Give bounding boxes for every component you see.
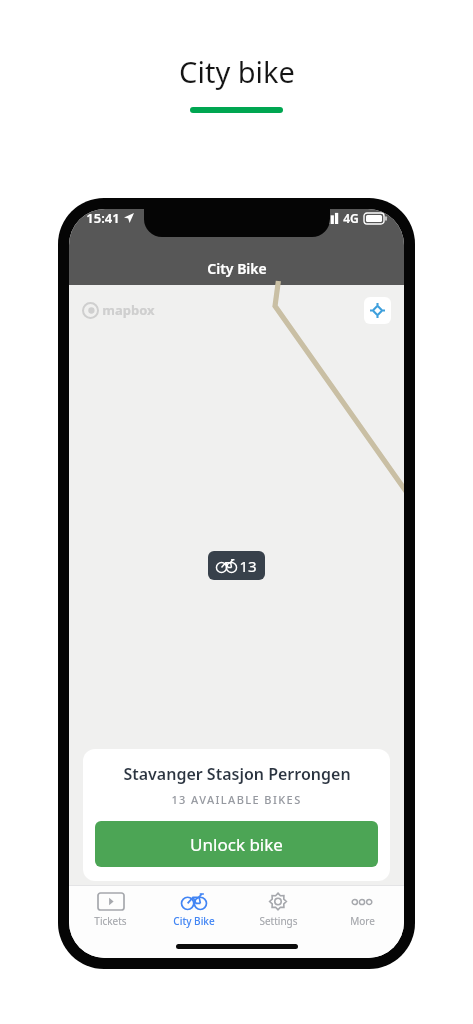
staticText: Tickets [94, 914, 127, 928]
staticText: More [350, 914, 375, 928]
button[interactable]: 13 [208, 551, 265, 580]
staticText: mapbox [102, 301, 155, 319]
staticText: 4G [343, 210, 359, 226]
staticText: Unlock bike [190, 833, 283, 856]
button[interactable]: Unlock bike [95, 821, 378, 867]
button[interactable]: My location [364, 297, 391, 324]
staticText: Settings [259, 914, 298, 928]
button[interactable]: Settings [236, 892, 320, 928]
staticText: City bike [179, 52, 295, 91]
button[interactable]: More [320, 892, 404, 928]
button[interactable]: Tickets [69, 892, 152, 928]
staticText: 13 AVAILABLE BIKES [171, 792, 302, 807]
staticText: City Bike [207, 259, 267, 278]
staticText: Stavanger Stasjon Perrongen [123, 763, 351, 785]
button[interactable]: City Bike [152, 892, 236, 928]
button[interactable]: Stavanger Stasjon Perrongen [83, 749, 390, 881]
staticText: City Bike [173, 914, 215, 928]
staticText: 15:41 [86, 209, 120, 227]
staticText: 13 [239, 556, 257, 576]
